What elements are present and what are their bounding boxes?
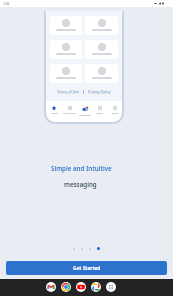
button[interactable]: Messages [77,106,92,116]
button[interactable]: Get Service [62,106,77,114]
button[interactable] [85,16,118,35]
button[interactable]: Home [46,106,62,114]
button[interactable]: Chrome [61,282,71,292]
button[interactable]: Get Started [6,261,167,275]
button[interactable]: Gmail [46,282,56,292]
button[interactable]: YouTube [76,282,86,292]
staticText: Get Service [63,111,76,114]
staticText: Home [51,111,58,114]
staticText: messaging [64,180,97,188]
button[interactable] [50,64,82,83]
button[interactable]: MyBill [92,106,107,114]
button[interactable] [50,16,82,35]
button[interactable]: Privacy Policy [88,89,111,94]
staticText: MyBill [96,111,103,114]
button[interactable] [50,40,82,59]
staticText: More [112,111,118,114]
staticText: 7:26 [3,2,10,6]
button[interactable]: More [107,106,122,114]
staticText: Get Started [73,265,101,272]
staticText: Simple and Intuitive [51,164,112,172]
button[interactable] [85,40,118,59]
button[interactable] [85,64,118,83]
button[interactable]: Photos [91,282,101,292]
button[interactable]: All apps [106,282,116,292]
button[interactable] [97,247,100,250]
button[interactable]: Terms of Use [57,89,79,94]
staticText: Messages [79,113,91,116]
